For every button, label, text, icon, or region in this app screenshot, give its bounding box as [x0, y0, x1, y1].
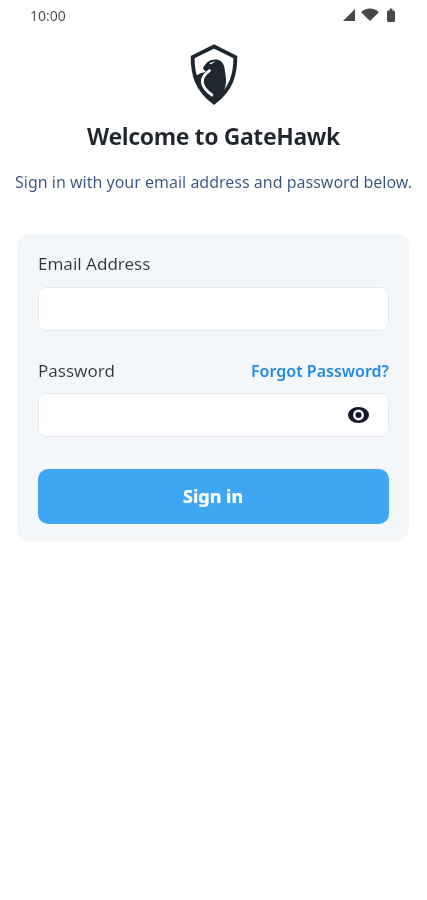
button[interactable] [38, 393, 389, 437]
staticText: Sign in with your email address and pass… [0, 171, 427, 193]
staticText: Welcome to GateHawk [0, 120, 427, 151]
staticText: Password [38, 359, 115, 382]
staticText: Sign in [183, 484, 244, 509]
staticText: 10:00 [30, 6, 66, 25]
button[interactable]: Sign in [38, 469, 389, 524]
button[interactable] [38, 287, 389, 331]
staticText: Email Address [38, 252, 151, 275]
button[interactable]: Forgot Password? [251, 360, 389, 382]
